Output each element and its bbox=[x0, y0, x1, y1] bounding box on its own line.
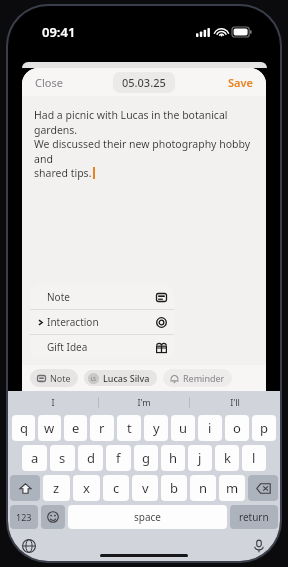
button[interactable]: 123 bbox=[10, 505, 38, 529]
staticText: h bbox=[169, 449, 178, 467]
button[interactable]: k bbox=[215, 445, 239, 471]
staticText: I'm bbox=[137, 396, 151, 408]
button[interactable]: Shift bbox=[10, 475, 40, 501]
staticText: m bbox=[226, 479, 239, 497]
button[interactable]: Note bbox=[30, 285, 174, 309]
button[interactable]: space bbox=[68, 505, 227, 529]
staticText: q bbox=[20, 419, 28, 437]
staticText: Interaction bbox=[47, 315, 99, 329]
staticText: r bbox=[99, 419, 105, 437]
button[interactable]: s bbox=[50, 445, 75, 471]
staticText: 05.03.25 bbox=[122, 75, 166, 90]
staticText: p bbox=[260, 419, 268, 437]
staticText: e bbox=[72, 419, 80, 437]
button[interactable]: I'm bbox=[99, 391, 189, 413]
button[interactable]: Reminder bbox=[163, 369, 232, 387]
button[interactable]: w bbox=[38, 415, 61, 441]
button[interactable]: b bbox=[161, 475, 187, 501]
staticText: Close bbox=[35, 75, 63, 90]
staticText: a bbox=[31, 449, 39, 467]
button[interactable]: Close bbox=[32, 72, 66, 93]
staticText: 09:41 bbox=[42, 23, 76, 41]
button[interactable]: c bbox=[103, 475, 129, 501]
staticText: LS bbox=[91, 376, 96, 382]
staticText: t bbox=[127, 419, 132, 437]
button[interactable]: h bbox=[161, 445, 185, 471]
button[interactable]: m bbox=[219, 475, 245, 501]
button[interactable]: t bbox=[117, 415, 141, 441]
button[interactable]: I'll bbox=[190, 391, 280, 413]
button[interactable]: y bbox=[144, 415, 168, 441]
staticText: Note bbox=[47, 290, 70, 304]
button[interactable]: Note bbox=[30, 369, 78, 387]
staticText: I bbox=[51, 396, 55, 408]
button[interactable]: LS bbox=[84, 370, 157, 386]
staticText: w bbox=[44, 419, 55, 437]
button[interactable]: z bbox=[43, 475, 70, 501]
staticText: g bbox=[142, 449, 150, 467]
staticText: o bbox=[233, 419, 241, 437]
staticText: We discussed their new photography hobby… bbox=[34, 137, 254, 166]
button[interactable]: o bbox=[225, 415, 249, 441]
button[interactable]: f bbox=[106, 445, 131, 471]
staticText: c bbox=[113, 479, 120, 497]
staticText: f bbox=[116, 449, 121, 467]
staticText: b bbox=[170, 479, 178, 497]
staticText: Lucas Silva bbox=[103, 372, 150, 384]
staticText: y bbox=[153, 419, 160, 437]
button[interactable]: Save bbox=[225, 72, 256, 93]
staticText: u bbox=[179, 419, 188, 437]
staticText: j bbox=[198, 449, 202, 467]
staticText: 123 bbox=[16, 511, 32, 523]
button[interactable]: Gift Idea bbox=[30, 335, 174, 359]
button[interactable]: n bbox=[190, 475, 216, 501]
button[interactable]: r bbox=[90, 415, 114, 441]
button[interactable]: 05.03.25 bbox=[113, 72, 175, 93]
staticText: Gift Idea bbox=[47, 340, 88, 354]
staticText: Save bbox=[228, 75, 253, 90]
button[interactable]: i bbox=[198, 415, 222, 441]
staticText: x bbox=[83, 479, 90, 497]
staticText: return bbox=[239, 510, 269, 524]
button[interactable]: g bbox=[134, 445, 158, 471]
button[interactable]: I bbox=[8, 391, 98, 413]
button[interactable]: Emoji bbox=[41, 505, 65, 529]
button[interactable]: Change keyboard bbox=[20, 537, 38, 555]
staticText: n bbox=[199, 479, 208, 497]
staticText: space bbox=[134, 510, 161, 524]
staticText: Reminder bbox=[183, 372, 225, 384]
button[interactable]: a bbox=[22, 445, 47, 471]
button[interactable]: p bbox=[252, 415, 276, 441]
button[interactable]: Interaction bbox=[30, 310, 174, 334]
button[interactable]: v bbox=[132, 475, 158, 501]
button[interactable]: q bbox=[12, 415, 35, 441]
staticText: i bbox=[208, 419, 212, 437]
button[interactable]: return bbox=[230, 505, 278, 529]
button[interactable]: e bbox=[64, 415, 87, 441]
staticText: shared tips. bbox=[34, 166, 92, 180]
button[interactable]: u bbox=[171, 415, 195, 441]
staticText: Had a picnic with Lucas in the botanical… bbox=[34, 108, 254, 137]
staticText: l bbox=[252, 449, 256, 467]
staticText: Note bbox=[50, 372, 71, 384]
button[interactable]: x bbox=[73, 475, 100, 501]
staticText: I'll bbox=[230, 396, 240, 408]
button[interactable]: Backspace bbox=[248, 475, 278, 501]
button[interactable]: Dictate bbox=[250, 537, 268, 555]
button[interactable]: j bbox=[188, 445, 212, 471]
staticText: k bbox=[224, 449, 231, 467]
staticText: s bbox=[59, 449, 66, 467]
button[interactable]: l bbox=[242, 445, 266, 471]
button[interactable]: d bbox=[78, 445, 103, 471]
staticText: d bbox=[87, 449, 95, 467]
staticText: v bbox=[142, 479, 149, 497]
staticText: z bbox=[53, 479, 60, 497]
